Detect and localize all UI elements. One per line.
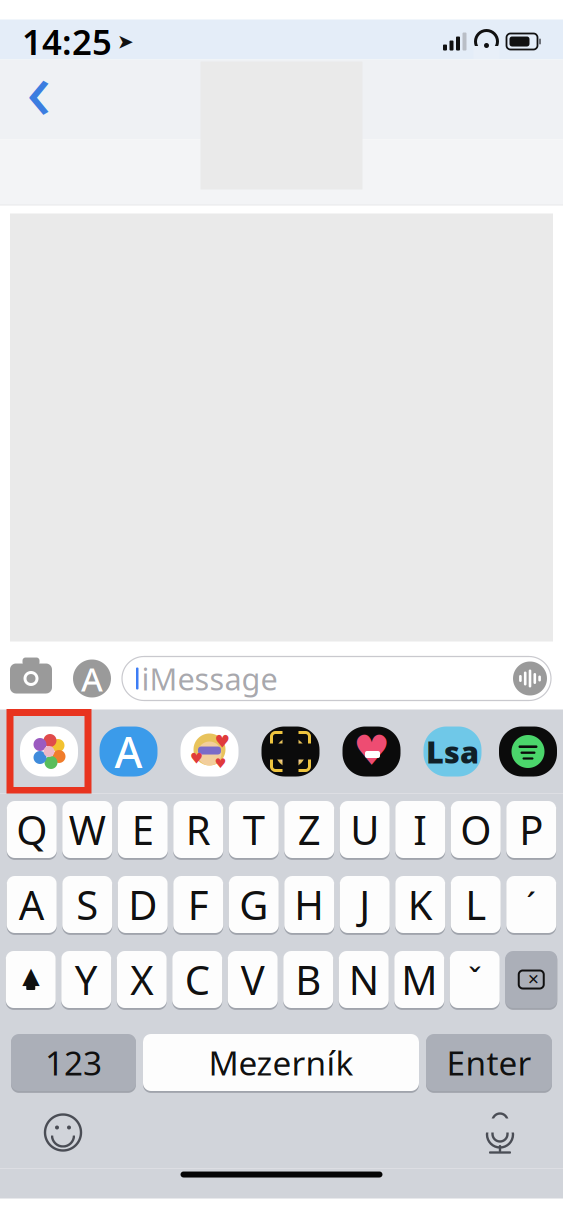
staticText: ♥	[214, 732, 230, 751]
staticText: S	[76, 878, 98, 931]
staticText: D	[128, 878, 157, 931]
button[interactable]: I	[395, 799, 445, 859]
staticText: iMessage	[141, 658, 277, 699]
button[interactable]: Memoji stickers	[169, 712, 250, 790]
staticText: ´	[526, 881, 536, 927]
button[interactable]: Dictation	[469, 1101, 531, 1163]
button[interactable]: Enter	[426, 1032, 552, 1092]
staticText: Lsa	[426, 731, 479, 772]
staticText: W	[69, 803, 106, 856]
button[interactable]: E	[118, 799, 168, 859]
staticText: F	[188, 878, 209, 931]
button[interactable]: Health app	[331, 712, 412, 790]
button[interactable]: K	[395, 874, 445, 934]
staticText: ✕	[527, 971, 539, 988]
button[interactable]: Message field	[122, 656, 551, 700]
staticText: I	[413, 803, 427, 856]
staticText: O	[460, 803, 491, 856]
staticText: Enter	[446, 1040, 531, 1085]
button[interactable]: W	[62, 799, 112, 859]
button[interactable]: B	[283, 949, 333, 1009]
button[interactable]: App Store	[88, 712, 169, 790]
button[interactable]: 123	[11, 1032, 136, 1092]
button[interactable]: M	[394, 949, 444, 1009]
button[interactable]: D	[118, 874, 168, 934]
staticText: Q	[16, 803, 47, 856]
staticText: 123	[45, 1040, 102, 1085]
button[interactable]: ´	[506, 874, 556, 934]
staticText: R	[186, 803, 211, 856]
staticText: U	[350, 803, 379, 856]
button[interactable]: Emoji keyboard	[32, 1101, 94, 1163]
button[interactable]: Delete	[505, 949, 557, 1009]
button[interactable]: Mezerník	[143, 1032, 419, 1092]
staticText: A	[19, 878, 45, 931]
staticText: N	[349, 953, 379, 1006]
button[interactable]: Z	[284, 799, 334, 859]
staticText: ♥	[353, 727, 390, 774]
staticText: K	[408, 878, 433, 931]
button[interactable]: Photos	[0, 712, 88, 790]
button[interactable]: App Store	[62, 653, 122, 703]
staticText: H	[294, 878, 324, 931]
staticText: G	[239, 878, 268, 931]
button[interactable]: R	[173, 799, 223, 859]
button[interactable]: Camera	[0, 653, 62, 703]
staticText: ➤	[117, 30, 134, 53]
staticText: A	[114, 723, 142, 780]
staticText: C	[185, 953, 210, 1006]
button[interactable]: H	[284, 874, 334, 934]
button[interactable]: J	[340, 874, 390, 934]
button[interactable]: G	[229, 874, 279, 934]
button[interactable]: V	[228, 949, 278, 1009]
staticText: Y	[75, 953, 98, 1006]
button[interactable]: A	[7, 874, 57, 934]
staticText: ♥	[190, 750, 203, 767]
staticText: ‹	[26, 33, 52, 142]
button[interactable]: Back	[8, 63, 70, 129]
button[interactable]: F	[173, 874, 223, 934]
staticText: ˇ	[468, 958, 481, 1001]
button[interactable]: T	[229, 799, 279, 859]
staticText: X	[130, 953, 153, 1006]
staticText: 14:25	[22, 18, 112, 64]
staticText: B	[295, 953, 321, 1006]
staticText: Z	[298, 803, 321, 856]
button[interactable]: Q	[7, 799, 57, 859]
button[interactable]: C	[172, 949, 222, 1009]
staticText: V	[241, 953, 265, 1006]
staticText: J	[359, 878, 370, 931]
staticText: E	[132, 803, 154, 856]
button[interactable]: L	[451, 874, 501, 934]
button[interactable]: ˇ	[450, 949, 500, 1009]
staticText: L	[465, 878, 486, 931]
button[interactable]: O	[451, 799, 501, 859]
staticText: A	[81, 656, 103, 701]
staticText: P	[519, 803, 543, 856]
button[interactable]: Lsa	[412, 712, 493, 790]
button[interactable]: X	[117, 949, 167, 1009]
button[interactable]: P	[506, 799, 556, 859]
staticText: Mezerník	[208, 1040, 353, 1085]
button[interactable]: Memoji	[250, 712, 331, 790]
staticText: ▲	[22, 963, 39, 988]
button[interactable]: Y	[61, 949, 111, 1009]
button[interactable]: N	[339, 949, 389, 1009]
staticText: T	[243, 803, 265, 856]
button[interactable]: Spotify	[493, 712, 563, 790]
button[interactable]: S	[62, 874, 112, 934]
staticText: ♥	[214, 756, 226, 771]
button[interactable]: Shift	[6, 949, 56, 1009]
button[interactable]: U	[340, 799, 390, 859]
staticText: M	[401, 953, 437, 1006]
